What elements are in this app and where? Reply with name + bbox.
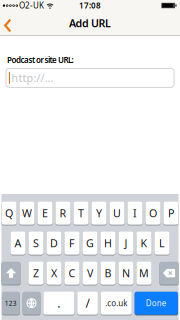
button[interactable]: H (100, 232, 116, 255)
staticText: .co.uk (105, 298, 127, 308)
staticText: W (22, 206, 32, 220)
button[interactable]: 123 (2, 292, 20, 315)
staticText: I (133, 206, 137, 220)
staticText: O (149, 206, 157, 220)
staticText: 17:08 (79, 0, 101, 11)
button[interactable]: E (37, 202, 53, 225)
button[interactable]: D (46, 232, 62, 255)
staticText: S (33, 236, 39, 250)
button[interactable]: Shift (1, 262, 21, 285)
button[interactable]: N (118, 262, 134, 285)
staticText: 123 (5, 299, 17, 308)
staticText: T (78, 206, 84, 220)
button[interactable]: S (28, 232, 44, 255)
button[interactable]: Y (91, 202, 107, 225)
button[interactable]: P (163, 202, 179, 225)
button[interactable]: X (46, 262, 62, 285)
staticText: G (86, 236, 94, 250)
button[interactable]: B (100, 262, 116, 285)
staticText: U (113, 206, 121, 220)
staticText: F (69, 236, 75, 250)
staticText: E (42, 206, 48, 220)
button[interactable]: W (19, 202, 35, 225)
staticText: Done (146, 298, 167, 308)
button[interactable]: Delete (159, 262, 178, 285)
staticText: N (122, 266, 130, 280)
staticText: . (57, 295, 60, 311)
button[interactable]: I (127, 202, 143, 225)
staticText: V (87, 266, 93, 280)
button[interactable]: F (64, 232, 80, 255)
staticText: P (168, 206, 174, 220)
staticText: J (124, 236, 127, 250)
staticText: D (50, 236, 58, 250)
staticText: K (140, 236, 147, 250)
button[interactable]: A (10, 232, 26, 255)
button[interactable]: R (55, 202, 71, 225)
staticText: Y (96, 206, 102, 220)
staticText: R (59, 206, 66, 220)
button[interactable]: K (136, 232, 152, 255)
staticText: Podcast or site URL: (7, 55, 73, 65)
staticText: / (85, 295, 89, 311)
button[interactable]: Next keyboard (23, 292, 40, 315)
staticText: X (51, 266, 57, 280)
staticText: Z (33, 266, 39, 280)
button[interactable]: Back (0, 11, 13, 35)
button[interactable]: Q (1, 202, 17, 225)
button[interactable]: .co.uk (101, 292, 132, 315)
button[interactable]: M (136, 262, 151, 285)
button[interactable]: T (73, 202, 89, 225)
staticText: H (104, 236, 112, 250)
button[interactable]: Z (28, 262, 44, 285)
button[interactable]: O (145, 202, 161, 225)
staticText: Add URL (69, 16, 111, 30)
button[interactable]: Podcast or site URL (6, 68, 174, 87)
staticText: A (14, 236, 21, 250)
staticText: L (159, 236, 165, 250)
button[interactable]: G (82, 232, 98, 255)
button[interactable]: Done (135, 292, 178, 315)
button[interactable]: V (82, 262, 98, 285)
button[interactable]: J (118, 232, 134, 255)
button[interactable]: . (43, 292, 74, 315)
button[interactable]: L (154, 232, 170, 255)
button[interactable]: U (109, 202, 125, 225)
staticText: http://... (11, 71, 53, 85)
staticText: M (139, 266, 149, 280)
staticText: O2-UK (19, 0, 44, 11)
staticText: Q (5, 206, 13, 220)
button[interactable]: / (77, 292, 98, 315)
button[interactable]: C (64, 262, 80, 285)
staticText: B (104, 266, 111, 280)
staticText: C (68, 266, 75, 280)
